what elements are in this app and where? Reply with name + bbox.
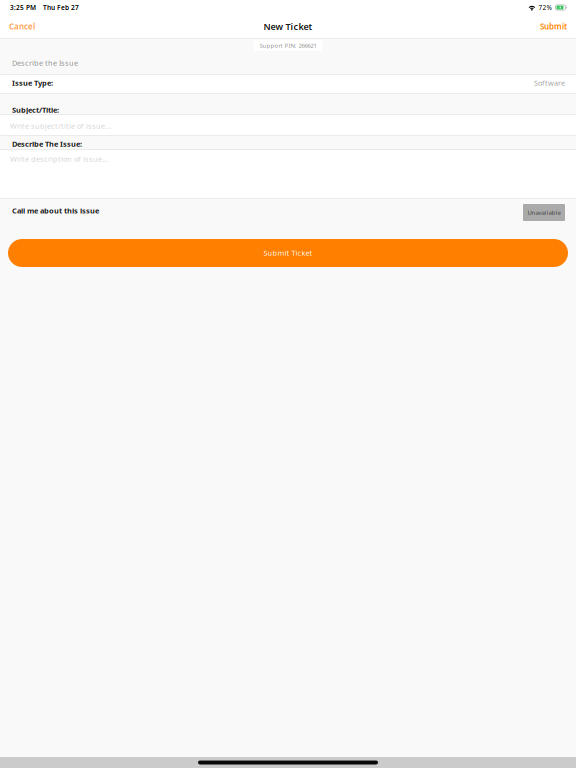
- staticText: Support PIN: 266621: [259, 42, 316, 49]
- button[interactable]: Write subject/title of issue...: [0, 115, 576, 135]
- staticText: Software: [534, 78, 565, 88]
- button[interactable]: Unavailable: [523, 204, 565, 221]
- staticText: New Ticket: [263, 20, 312, 32]
- button[interactable]: Submit: [531, 16, 576, 36]
- staticText: Write description of issue...: [10, 154, 108, 164]
- staticText: Thu Feb 27: [43, 3, 79, 12]
- staticText: Describe the Issue: [12, 58, 78, 68]
- staticText: Submit Ticket: [263, 248, 312, 258]
- staticText: 72%: [539, 3, 552, 12]
- button[interactable]: Issue Type:: [0, 75, 576, 93]
- button[interactable]: Submit Ticket: [8, 239, 568, 267]
- staticText: 3:25 PM: [10, 3, 36, 12]
- staticText: Cancel: [9, 21, 35, 32]
- staticText: Write subject/title of issue...: [10, 121, 111, 131]
- staticText: Issue Type:: [12, 78, 53, 88]
- button[interactable]: Cancel: [0, 16, 44, 36]
- staticText: Subject/Title:: [12, 105, 59, 115]
- staticText: Submit: [540, 21, 567, 32]
- staticText: Describe The Issue:: [12, 139, 82, 149]
- staticText: Unavailable: [527, 208, 560, 216]
- staticText: Call me about this issue: [12, 205, 99, 215]
